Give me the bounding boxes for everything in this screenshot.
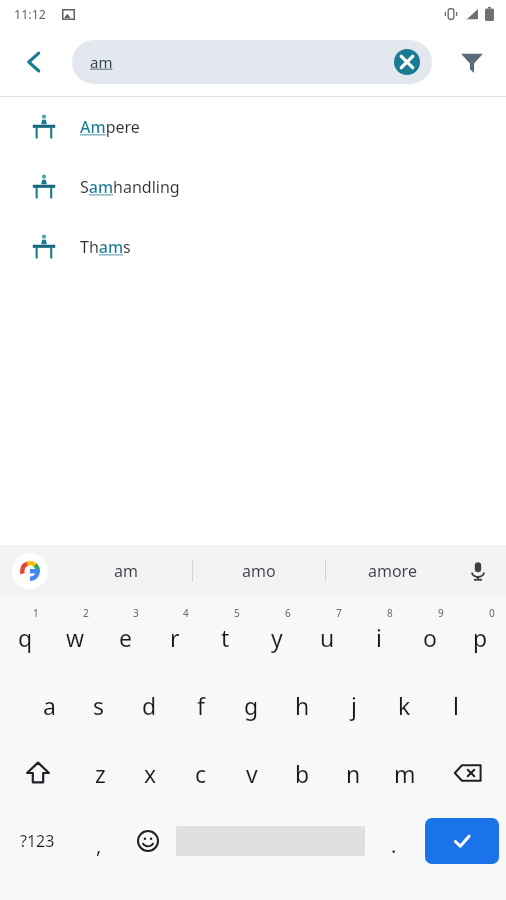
button[interactable]: j: [328, 671, 379, 739]
staticText: b: [295, 758, 310, 789]
staticText: z: [95, 758, 106, 789]
staticText: 2: [83, 606, 89, 620]
button[interactable]: r: [150, 603, 200, 671]
button[interactable]: .: [369, 807, 418, 875]
button[interactable]: n: [328, 739, 379, 807]
button[interactable]: m: [379, 739, 430, 807]
staticText: 4: [183, 606, 189, 620]
staticText: w: [66, 622, 85, 653]
staticText: ?123: [20, 830, 55, 852]
button[interactable]: f: [175, 671, 226, 739]
button[interactable]: Clear: [392, 47, 422, 77]
staticText: am: [90, 52, 113, 72]
button[interactable]: e: [100, 603, 150, 671]
staticText: f: [197, 690, 205, 721]
staticText: h: [295, 690, 310, 721]
staticText: 1: [33, 606, 39, 620]
button[interactable]: amore: [326, 545, 458, 597]
staticText: t: [221, 622, 230, 653]
staticText: l: [453, 690, 459, 721]
button[interactable]: s: [74, 671, 124, 739]
staticText: ,: [96, 832, 102, 859]
staticText: Thams: [80, 236, 131, 258]
staticText: am: [114, 560, 138, 582]
staticText: x: [144, 758, 157, 789]
button[interactable]: x: [125, 739, 175, 807]
button[interactable]: amo: [193, 545, 325, 597]
button[interactable]: Back: [12, 40, 56, 84]
staticText: g: [244, 690, 259, 721]
button[interactable]: am: [72, 40, 432, 84]
button[interactable]: Enter: [425, 818, 499, 864]
button[interactable]: q: [0, 603, 50, 671]
staticText: k: [398, 690, 411, 721]
button[interactable]: am: [60, 545, 192, 597]
staticText: j: [351, 690, 357, 721]
button[interactable]: w: [50, 603, 100, 671]
button[interactable]: v: [226, 739, 277, 807]
staticText: d: [142, 690, 157, 721]
staticText: 0: [489, 606, 495, 620]
button[interactable]: p: [455, 603, 506, 671]
staticText: .: [391, 832, 397, 859]
button[interactable]: Backspace: [430, 739, 506, 807]
staticText: u: [320, 622, 335, 653]
button[interactable]: Filter: [450, 40, 494, 84]
button[interactable]: Emoji: [123, 807, 172, 875]
staticText: Ampere: [80, 116, 140, 138]
button[interactable]: Thams: [0, 217, 506, 277]
staticText: n: [346, 758, 361, 789]
staticText: s: [93, 690, 105, 721]
button[interactable]: k: [379, 671, 430, 739]
staticText: 5: [234, 606, 240, 620]
staticText: 11:12: [14, 6, 46, 23]
button[interactable]: Google: [12, 553, 48, 589]
button[interactable]: u: [302, 603, 353, 671]
staticText: m: [394, 758, 416, 789]
staticText: c: [195, 758, 207, 789]
staticText: 9: [438, 606, 444, 620]
button[interactable]: c: [175, 739, 226, 807]
button[interactable]: Ampere: [0, 97, 506, 157]
button[interactable]: Samhandling: [0, 157, 506, 217]
staticText: amore: [368, 560, 417, 582]
staticText: Samhandling: [80, 176, 180, 198]
staticText: q: [18, 622, 33, 653]
button[interactable]: o: [404, 603, 455, 671]
button[interactable]: z: [75, 739, 125, 807]
button[interactable]: d: [124, 671, 175, 739]
button[interactable]: Shift: [0, 739, 75, 807]
button[interactable]: Voice input: [460, 553, 496, 589]
staticText: 3: [133, 606, 139, 620]
button[interactable]: y: [251, 603, 302, 671]
staticText: p: [473, 622, 488, 653]
button[interactable]: ,: [74, 807, 123, 875]
staticText: amo: [242, 560, 276, 582]
staticText: e: [119, 622, 132, 653]
staticText: r: [170, 622, 180, 653]
button[interactable]: h: [277, 671, 328, 739]
button[interactable]: i: [353, 603, 404, 671]
button[interactable]: g: [226, 671, 277, 739]
button[interactable]: b: [277, 739, 328, 807]
staticText: i: [376, 622, 382, 653]
staticText: 8: [387, 606, 393, 620]
staticText: v: [246, 758, 258, 789]
button[interactable]: l: [430, 671, 481, 739]
staticText: a: [43, 690, 56, 721]
staticText: 6: [285, 606, 291, 620]
button[interactable]: ?123: [0, 807, 74, 875]
button[interactable]: t: [200, 603, 251, 671]
staticText: o: [423, 622, 437, 653]
staticText: y: [271, 622, 283, 653]
button[interactable]: a: [24, 671, 74, 739]
staticText: 7: [336, 606, 342, 620]
